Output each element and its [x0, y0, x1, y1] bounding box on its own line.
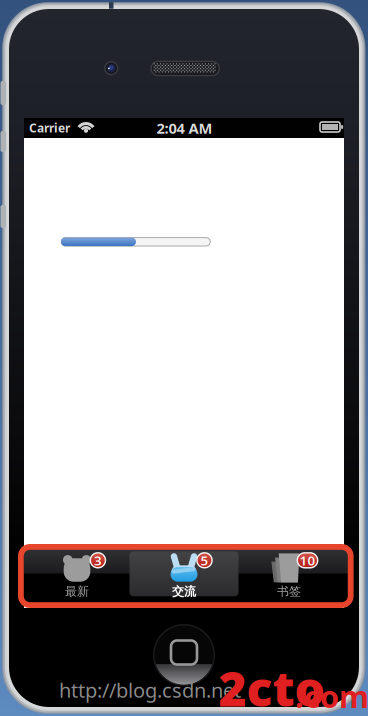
staticText: 5 [200, 551, 208, 569]
staticText: Carrier [29, 120, 70, 136]
staticText: .com [295, 676, 368, 716]
button[interactable]: 3 [0, 0, 368, 716]
staticText: 书签 [277, 584, 301, 599]
staticText: 2:04 AM [156, 118, 212, 138]
button[interactable]: 10 [0, 0, 368, 716]
staticText: 3 [94, 551, 102, 569]
staticText: 2cto [218, 656, 325, 716]
button[interactable]: 5 [0, 0, 368, 716]
staticText: 最新 [65, 584, 89, 599]
staticText: 10 [299, 551, 315, 569]
staticText: http://blog.csdn.net [59, 677, 241, 703]
staticText: 交流 [172, 584, 196, 599]
